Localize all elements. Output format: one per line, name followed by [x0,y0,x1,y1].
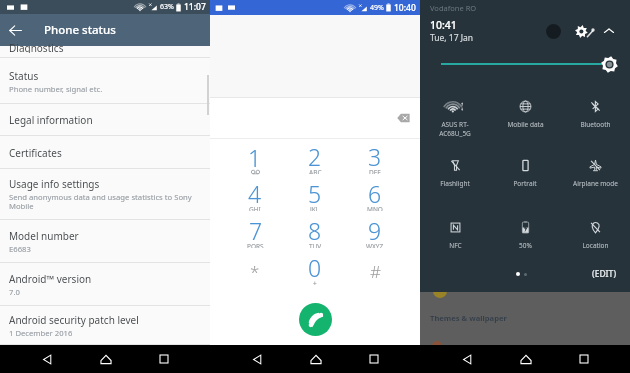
staticText: # [370,260,381,283]
button[interactable]: Android™ version [0,263,210,306]
staticText: PQRS [247,242,264,248]
button[interactable]: 2 [285,141,345,178]
button[interactable]: 9 [345,215,405,252]
staticText: 8 [308,215,322,246]
staticText: 1 December 2016 [9,328,73,338]
staticText: DEF [369,168,381,174]
button[interactable]: Back [445,345,490,373]
button[interactable]: Home [503,345,548,373]
button[interactable]: ASUS RT- AC68U_5G [420,100,490,138]
button[interactable]: Recents [351,345,396,373]
button[interactable]: Usage info settings [0,169,210,220]
button[interactable]: Back [25,345,70,373]
staticText: ABC [309,168,322,174]
staticText: Phone status [44,22,116,38]
staticText: Status [9,69,39,83]
staticText: 5 [308,178,322,209]
staticText: Usage info settings [9,177,100,191]
staticText: 0 [308,252,322,283]
staticText: NFC [449,241,462,250]
staticText: GHI [249,205,261,211]
button[interactable]: Brightness [601,56,618,73]
staticText: WXYZ [366,242,384,248]
staticText: + [313,279,317,287]
button[interactable]: * [225,252,285,291]
button[interactable]: Recents [561,345,606,373]
staticText: 10:40 [394,2,416,14]
button[interactable]: NFC [420,221,490,250]
button[interactable]: Recents [141,345,186,373]
button[interactable]: 4 [225,178,285,215]
staticText: 50% [519,241,532,250]
button[interactable]: Diagnostics [0,46,210,58]
staticText: 1 [248,142,262,173]
staticText: Certificates [9,146,62,160]
staticText: Send anonymous data and usage statistics… [9,192,200,212]
button[interactable]: Certificates [0,136,210,169]
button[interactable]: Portrait [490,159,560,188]
button[interactable]: User [546,24,561,39]
button[interactable]: Backspace [393,108,413,128]
staticText: 3 [368,141,382,172]
staticText: Diagnostics [9,41,64,53]
staticText: * [250,260,260,283]
staticText: Themes & wallpaper [430,313,507,323]
staticText: MNO [367,205,383,211]
button[interactable]: Flashlight [420,159,490,188]
button[interactable]: Settings [575,25,595,38]
staticText: Bluetooth [580,120,611,129]
button[interactable]: Airplane mode [560,159,630,188]
staticText: 6 [368,178,382,209]
button[interactable]: 5 [285,178,345,215]
staticText: Tue, 17 Jan [430,32,474,44]
button[interactable]: Location [560,221,630,250]
button[interactable]: Android security patch level [0,306,210,345]
button[interactable]: Model number [0,220,210,263]
button[interactable]: Home [293,345,338,373]
staticText: Vodafone RO [430,3,477,13]
button[interactable]: Home [83,345,128,373]
button[interactable]: 1 [225,141,285,178]
button[interactable]: 8 [285,215,345,252]
staticText: Model number [9,229,79,243]
button[interactable]: Status [0,58,210,104]
button[interactable]: Navigate up [0,15,30,45]
staticText: 4 [248,178,262,209]
button[interactable]: Legal information [0,104,210,136]
staticText: 2 [308,141,322,172]
button[interactable]: Bluetooth [560,100,630,129]
button[interactable]: 3 [345,141,405,178]
staticText: 10:41 [430,18,457,32]
staticText: Portrait [513,179,537,188]
staticText: 11:07 [184,1,206,13]
staticText: 7.0 [9,287,20,297]
button[interactable]: 7 [225,215,285,252]
button[interactable]: Collapse [603,25,615,37]
staticText: Flashlight [440,179,470,188]
button[interactable]: 50% [490,221,560,250]
staticText: Android security patch level [9,313,139,327]
staticText: JKL [310,205,320,211]
staticText: Airplane mode [573,179,618,188]
staticText: 7 [249,215,263,246]
button[interactable]: (EDIT) [592,268,617,280]
staticText: Phone number, signal etc. [9,84,103,94]
button[interactable]: Call [299,303,332,336]
button[interactable]: Mobile data [490,100,560,129]
button[interactable]: Back [235,345,280,373]
staticText: ASUS RT- AC68U_5G [439,120,471,138]
staticText: E6683 [9,244,31,254]
staticText: Android™ version [9,272,92,286]
staticText: Mobile data [507,120,544,129]
staticText: Location [582,241,609,250]
staticText: 9 [368,215,382,246]
staticText: TUV [309,242,322,248]
button[interactable]: 6 [345,178,405,215]
staticText: 49% [370,3,384,13]
staticText: 63% [160,2,174,12]
staticText: Legal information [9,113,93,127]
button[interactable]: # [345,252,405,291]
button[interactable]: 0 [285,252,345,291]
